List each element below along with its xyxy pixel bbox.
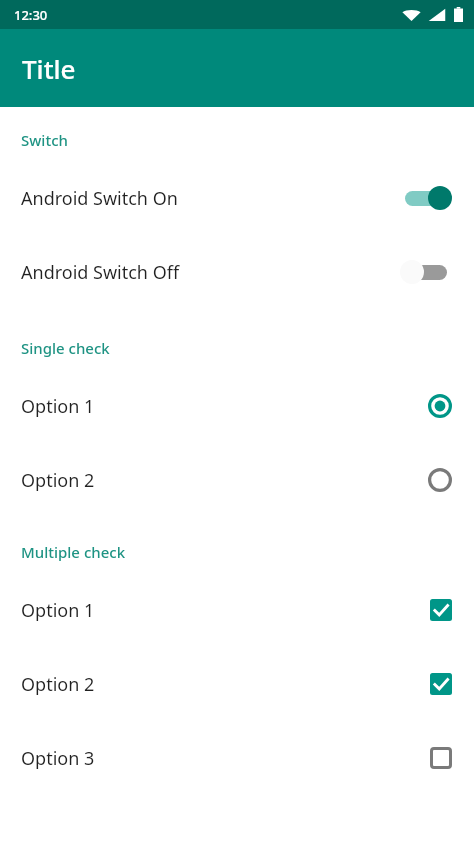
button[interactable]: Option 3 — [0, 721, 474, 795]
staticText: Option 1 — [21, 598, 95, 623]
button[interactable]: Option 2 — [0, 647, 474, 721]
button[interactable]: Option 1 — [0, 573, 474, 647]
staticText: Multiple check — [21, 542, 126, 562]
button[interactable]: Android Switch Off — [0, 235, 474, 309]
staticText: Option 2 — [21, 672, 95, 697]
staticText: Title — [22, 51, 76, 86]
button[interactable]: Option 1 — [0, 369, 474, 443]
staticText: Switch — [21, 130, 68, 150]
staticText: Option 3 — [21, 746, 95, 771]
staticText: Android Switch Off — [21, 260, 180, 285]
staticText: Option 2 — [21, 468, 95, 493]
button[interactable]: Android Switch On — [0, 161, 474, 235]
staticText: Single check — [21, 338, 110, 358]
button[interactable]: Option 2 — [0, 443, 474, 517]
staticText: Android Switch On — [21, 186, 178, 211]
staticText: 12:30 — [14, 6, 48, 24]
staticText: Option 1 — [21, 394, 95, 419]
